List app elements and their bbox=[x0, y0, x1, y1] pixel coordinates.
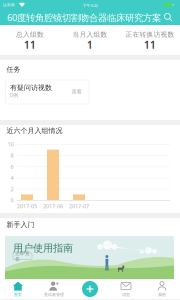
staticText: 用户使用指南 bbox=[13, 242, 73, 254]
staticText: 8 bbox=[10, 152, 13, 159]
staticText: 近六个月入组情况 bbox=[7, 127, 63, 135]
staticText: 我的 bbox=[158, 292, 166, 297]
button[interactable]: 用户使用指南 bbox=[5, 236, 174, 280]
button[interactable]: 有疑问访视数 bbox=[5, 80, 89, 104]
button[interactable]: 当月入组数 bbox=[60, 25, 120, 55]
staticText: 2 bbox=[10, 185, 13, 193]
staticText: 总入组数 bbox=[16, 31, 44, 39]
button[interactable]: 正在转换访视数 bbox=[120, 25, 180, 55]
staticText: 2017-07 bbox=[69, 203, 89, 210]
staticText: 下午3:22 bbox=[82, 3, 97, 8]
button[interactable]: 搜索 bbox=[162, 11, 175, 24]
button[interactable]: 首页 bbox=[0, 279, 36, 299]
staticText: 正在转换访视数 bbox=[125, 31, 174, 39]
staticText: 新手入门 bbox=[7, 221, 35, 229]
button[interactable]: 立即查看 bbox=[13, 253, 32, 259]
staticText: 2017-06 bbox=[43, 203, 63, 210]
staticText: 0 bbox=[10, 197, 13, 204]
staticText: 10 bbox=[7, 141, 13, 148]
button[interactable]: 总入组数 bbox=[0, 25, 60, 55]
button[interactable]: 新增 bbox=[79, 278, 101, 300]
staticText: 受试者管理 bbox=[44, 292, 64, 297]
staticText: 当月入组数 bbox=[72, 31, 107, 39]
button[interactable]: 受试者管理 bbox=[36, 279, 72, 299]
staticText: 60度转角腔镜切割吻合器临床研究方案 bbox=[7, 11, 161, 24]
staticText: 11 bbox=[144, 39, 156, 51]
staticText: 2017-05 bbox=[17, 203, 37, 210]
staticText: 1 bbox=[87, 39, 93, 51]
button[interactable]: 我的 bbox=[144, 279, 180, 299]
staticText: 查看 bbox=[71, 89, 81, 95]
staticText: 6 bbox=[10, 163, 13, 170]
staticText: 0例 bbox=[10, 92, 18, 98]
staticText: 任务 bbox=[7, 65, 21, 74]
staticText: 消息 bbox=[122, 292, 130, 297]
staticText: 有疑问访视数 bbox=[10, 84, 52, 92]
staticText: 首页 bbox=[14, 292, 22, 297]
staticText: 11 bbox=[24, 39, 36, 51]
staticText: 立即查看 bbox=[15, 250, 30, 262]
button[interactable]: 消息 bbox=[108, 279, 144, 299]
staticText: 4 bbox=[10, 174, 13, 181]
staticText: 运营商 bbox=[3, 3, 15, 7]
